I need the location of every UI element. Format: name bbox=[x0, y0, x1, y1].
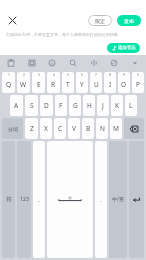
button[interactable]: 123 bbox=[17, 141, 31, 258]
staticText: P bbox=[136, 80, 140, 89]
staticText: 限定 bbox=[95, 18, 105, 24]
button[interactable]: Backspace bbox=[124, 118, 144, 139]
button[interactable]: Theme bbox=[107, 56, 121, 70]
staticText: I bbox=[109, 80, 112, 89]
staticText: Z bbox=[30, 124, 34, 133]
staticText: V bbox=[72, 124, 76, 133]
staticText: N bbox=[100, 124, 105, 133]
button[interactable]: V bbox=[68, 118, 80, 139]
button[interactable]: Z bbox=[25, 118, 38, 139]
button[interactable]: 8 bbox=[104, 72, 116, 93]
staticText: 2 bbox=[23, 73, 25, 77]
staticText: C bbox=[58, 124, 63, 133]
button[interactable]: Emoji bbox=[45, 56, 59, 70]
staticText: 中/英 bbox=[112, 196, 124, 203]
staticText: 7 bbox=[95, 73, 97, 77]
staticText: 5 bbox=[67, 73, 69, 77]
button[interactable]: N bbox=[96, 118, 108, 139]
staticText: , bbox=[38, 196, 40, 203]
button[interactable]: H bbox=[83, 95, 95, 116]
staticText: 6 bbox=[81, 73, 83, 77]
button[interactable]: Voice input bbox=[87, 56, 101, 70]
button[interactable]: G bbox=[69, 95, 81, 116]
button[interactable]: 中/英 bbox=[109, 141, 127, 258]
button[interactable]: 1 bbox=[2, 72, 15, 93]
staticText: E bbox=[37, 80, 41, 89]
staticText: G bbox=[73, 101, 78, 110]
button[interactable]: 7 bbox=[90, 72, 102, 93]
staticText: A bbox=[14, 101, 19, 110]
staticText: Q bbox=[6, 80, 12, 89]
staticText: 发布 bbox=[124, 18, 134, 24]
staticText: S bbox=[30, 101, 34, 110]
staticText: D bbox=[44, 101, 49, 110]
button[interactable]: X bbox=[40, 118, 52, 139]
button[interactable]: 5 bbox=[62, 72, 74, 93]
button[interactable]: 添加音乐 bbox=[107, 43, 140, 53]
staticText: B bbox=[86, 124, 91, 133]
button[interactable]: Space bbox=[47, 141, 93, 258]
staticText: K bbox=[115, 101, 120, 110]
staticText: 123 bbox=[20, 196, 29, 203]
staticText: 0 bbox=[137, 73, 139, 77]
button[interactable]: 9 bbox=[118, 72, 130, 93]
staticText: R bbox=[51, 80, 56, 89]
staticText: L bbox=[129, 101, 133, 110]
button[interactable]: L bbox=[125, 95, 137, 116]
button[interactable]: Clipboard bbox=[4, 56, 18, 70]
staticText: . bbox=[100, 196, 102, 203]
button[interactable]: F bbox=[55, 95, 67, 116]
staticText: 4 bbox=[53, 73, 55, 77]
staticText: M bbox=[113, 124, 119, 133]
button[interactable]: 2 bbox=[17, 72, 30, 93]
button[interactable]: K bbox=[111, 95, 123, 116]
button[interactable]: 发布 bbox=[117, 15, 141, 26]
staticText: 符 bbox=[6, 196, 12, 203]
button[interactable]: 符 bbox=[2, 141, 15, 258]
button[interactable]: S bbox=[25, 95, 38, 116]
button[interactable]: 限定 bbox=[88, 15, 112, 26]
staticText: F bbox=[59, 101, 63, 110]
button[interactable]: 6 bbox=[76, 72, 88, 93]
button[interactable]: Search bbox=[66, 56, 80, 70]
staticText: J bbox=[102, 101, 104, 110]
staticText: Y bbox=[80, 80, 84, 89]
staticText: W bbox=[20, 80, 27, 89]
button[interactable]: J bbox=[97, 95, 109, 116]
staticText: U bbox=[94, 80, 99, 89]
button[interactable]: M bbox=[110, 118, 122, 139]
button[interactable]: Collapse keyboard bbox=[128, 56, 142, 70]
staticText: 8 bbox=[109, 73, 111, 77]
button[interactable]: Sticker bbox=[25, 56, 39, 70]
staticText: X bbox=[44, 124, 48, 133]
staticText: 3 bbox=[38, 73, 40, 77]
staticText: 大胆说出心声，不要在意文笔，每个人都能写出打动自己的故事 bbox=[6, 32, 118, 37]
staticText: 1 bbox=[8, 73, 10, 77]
button[interactable]: 0 bbox=[132, 72, 144, 93]
staticText: H bbox=[87, 101, 92, 110]
staticText: O bbox=[121, 80, 127, 89]
staticText: 分词 bbox=[8, 126, 18, 132]
button[interactable]: B bbox=[82, 118, 94, 139]
staticText: 9 bbox=[123, 73, 125, 77]
button[interactable]: 分词 bbox=[2, 118, 23, 139]
button[interactable]: Close bbox=[5, 13, 19, 27]
button[interactable]: D bbox=[40, 95, 53, 116]
button[interactable]: C bbox=[54, 118, 66, 139]
staticText: T bbox=[66, 80, 70, 89]
button[interactable]: A bbox=[10, 95, 23, 116]
button[interactable]: 3 bbox=[32, 72, 45, 93]
button[interactable]: Enter bbox=[129, 141, 144, 258]
staticText: 添加音乐 bbox=[118, 45, 136, 51]
button[interactable]: 4 bbox=[47, 72, 60, 93]
